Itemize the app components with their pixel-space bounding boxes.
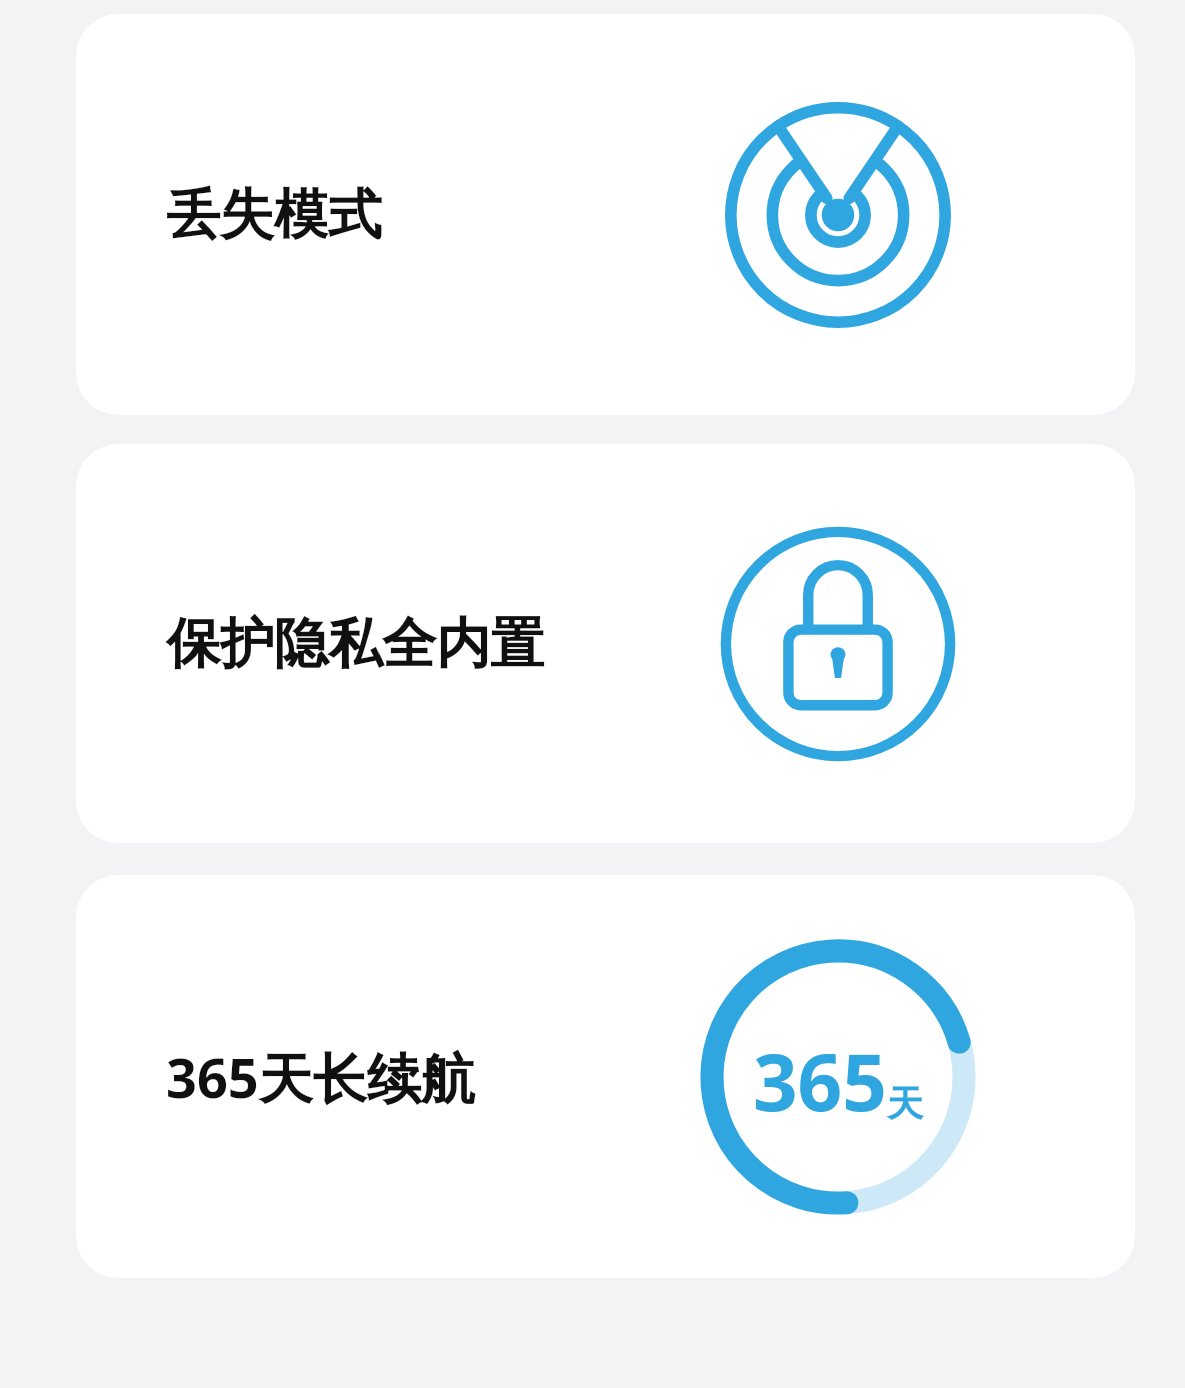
- staticText: 天: [887, 1081, 923, 1126]
- staticText: 365天长续航: [166, 1040, 475, 1114]
- button[interactable]: 保护隐私全内置: [76, 444, 1135, 843]
- staticText: 保护隐私全内置: [166, 610, 544, 678]
- button[interactable]: 丢失模式: [76, 14, 1135, 415]
- other: 保护隐私全内置: [688, 494, 988, 794]
- staticText: 365: [753, 1028, 887, 1134]
- other: 丢失模式: [688, 65, 988, 365]
- staticText: 丢失模式: [166, 181, 382, 249]
- button[interactable]: 365天长续航: [76, 875, 1135, 1278]
- other: 365天长续航: [688, 927, 988, 1227]
